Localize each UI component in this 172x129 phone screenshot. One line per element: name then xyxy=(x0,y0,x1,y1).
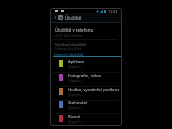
button[interactable]: Hudba, vyzváněcí podkres xyxy=(51,87,121,101)
button[interactable]: Různé xyxy=(51,114,121,125)
staticText: Výpočet... xyxy=(68,119,84,124)
staticText: Úložiště xyxy=(65,15,82,21)
staticText: Výpočet... xyxy=(68,92,84,97)
staticText: Výpočet... xyxy=(68,78,84,83)
staticText: 4,00 GB celkem xyxy=(55,33,83,38)
other: Back xyxy=(54,16,57,19)
staticText: Hudba, vyzváněcí podkres xyxy=(68,87,120,93)
staticText: Aplikace xyxy=(68,59,85,65)
button[interactable] xyxy=(51,38,121,50)
staticText: Výpočet... xyxy=(68,64,84,69)
button[interactable]: Fotografie, videa xyxy=(51,73,121,87)
staticText: Stahování xyxy=(68,100,88,106)
staticText: Interní úložiště xyxy=(55,46,82,51)
staticText: Úložiště v telefonu xyxy=(55,27,94,33)
staticText: Interní úložiště xyxy=(54,52,84,58)
staticText: Různé xyxy=(68,114,81,120)
staticText: 13:04 xyxy=(108,9,118,13)
staticText: Výchozí úložiště xyxy=(55,42,86,48)
button[interactable]: Aplikace xyxy=(51,59,121,73)
button[interactable]: Back xyxy=(51,13,121,22)
staticText: Fotografie, videa xyxy=(68,73,101,79)
button[interactable]: Stahování xyxy=(51,100,121,114)
staticText: Výpočet... xyxy=(68,105,84,110)
